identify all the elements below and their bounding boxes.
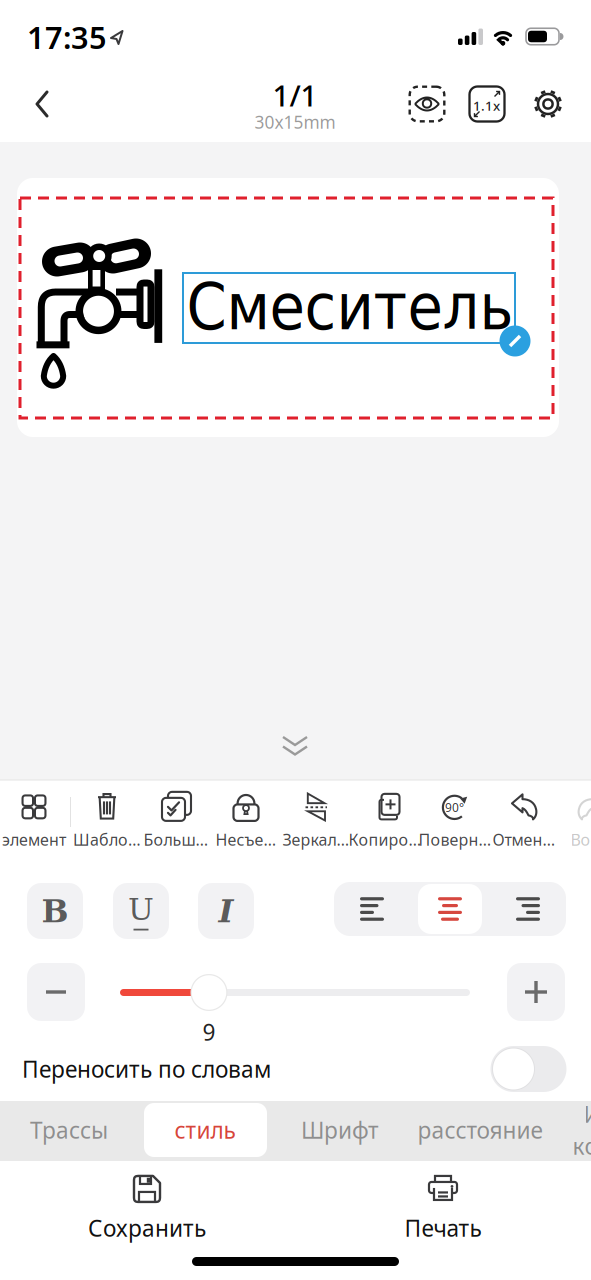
button[interactable]: Несъе… — [215, 790, 276, 850]
staticText: 9 — [202, 1017, 215, 1047]
button[interactable]: Трассы — [30, 1103, 108, 1157]
button[interactable]: Больш… — [143, 790, 208, 850]
staticText: Вос… — [570, 829, 591, 850]
staticText: 1.1x — [473, 97, 500, 114]
button[interactable]: Collapse — [273, 730, 317, 762]
button[interactable]: Вос… — [570, 790, 591, 850]
staticText: Копиро… — [348, 829, 421, 850]
staticText: Шабло… — [73, 829, 141, 850]
staticText: Смеситель — [186, 270, 513, 344]
button[interactable]: Копиро… — [348, 790, 421, 850]
staticText: I — [218, 892, 233, 930]
button[interactable]: Поверн… — [418, 790, 491, 850]
staticText: Сохранить — [88, 1213, 206, 1243]
button[interactable]: Underline — [113, 883, 169, 939]
staticText: 1/1 — [272, 75, 317, 114]
button[interactable]: Align center — [418, 884, 482, 934]
button[interactable]: Смеситель — [170, 261, 528, 357]
staticText: Больш… — [143, 829, 208, 850]
button[interactable]: Шабло… — [73, 790, 141, 850]
button[interactable]: Settings — [528, 84, 568, 124]
button[interactable]: Align right — [496, 884, 560, 934]
staticText: Трассы — [30, 1115, 108, 1145]
button[interactable]: И конец — [572, 1099, 591, 1161]
staticText: Несъе… — [215, 829, 276, 850]
staticText: кон — [572, 1131, 591, 1161]
staticText: Поверн… — [418, 829, 491, 850]
button[interactable]: Increase — [507, 963, 565, 1021]
button[interactable]: стиль — [174, 1103, 235, 1157]
button[interactable]: Align left — [340, 884, 404, 934]
button[interactable]: Сохранить — [88, 1171, 206, 1243]
staticText: Переносить по словам — [22, 1054, 271, 1084]
staticText: стиль — [174, 1115, 235, 1145]
button[interactable]: расстояние — [417, 1103, 542, 1157]
button[interactable]: Zoom scale — [467, 84, 507, 124]
button[interactable]: Bold — [27, 883, 83, 939]
staticText: U — [128, 891, 154, 927]
staticText: Печать — [404, 1213, 481, 1243]
staticText: элемент — [2, 829, 66, 850]
staticText: B — [41, 892, 68, 930]
button[interactable]: Шрифт — [301, 1103, 379, 1157]
staticText: Шрифт — [301, 1115, 379, 1145]
button[interactable]: Отмен… — [492, 790, 555, 850]
staticText: расстояние — [417, 1115, 542, 1145]
staticText: Зеркал… — [282, 829, 349, 850]
staticText: 17:35 — [27, 17, 107, 57]
button[interactable]: Печать — [404, 1171, 481, 1243]
staticText: 90° — [445, 799, 464, 815]
staticText: Отмен… — [492, 829, 555, 850]
button[interactable]: Back — [20, 82, 64, 126]
staticText: 30x15mm — [254, 110, 335, 133]
button[interactable]: Italic — [198, 883, 254, 939]
button[interactable]: Preview — [407, 84, 447, 124]
button[interactable]: Переносить по словам — [490, 1046, 566, 1092]
staticText: И — [583, 1099, 591, 1129]
button[interactable]: элемент — [2, 790, 66, 850]
button[interactable]: Зеркал… — [282, 790, 349, 850]
button[interactable]: Decrease — [27, 963, 85, 1021]
